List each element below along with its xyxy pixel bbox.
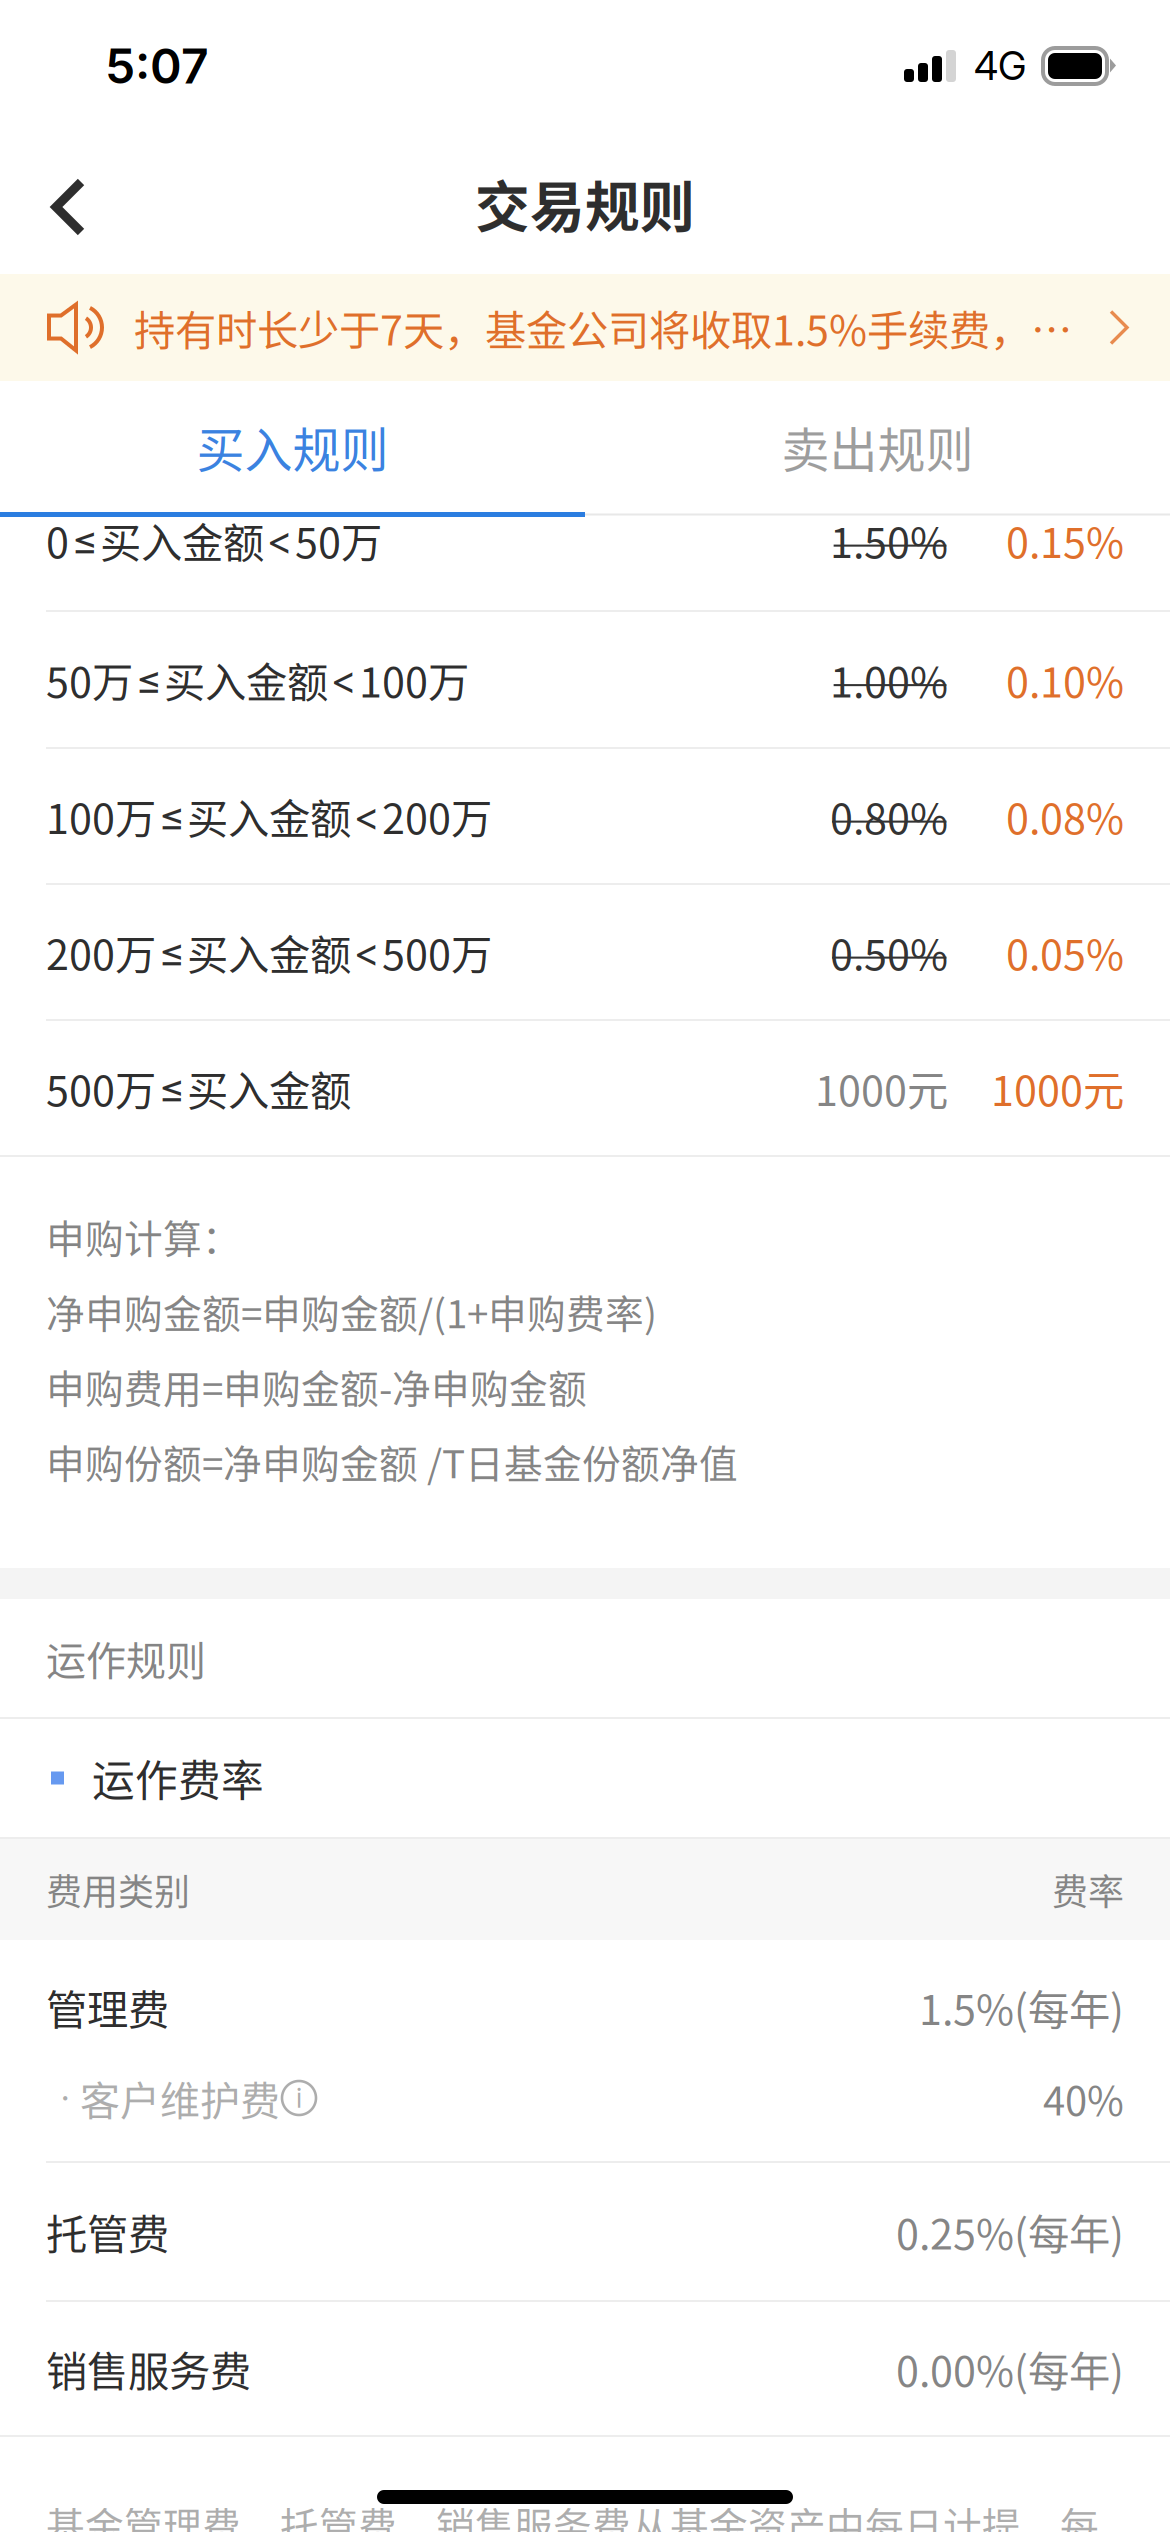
- staticText: 申购费用=申购金额-净申购金额: [46, 1358, 587, 1414]
- staticText: <: [354, 792, 379, 840]
- button[interactable]: ·: [0, 2074, 1170, 2161]
- staticText: 4G: [974, 43, 1026, 89]
- staticText: 卖出规则: [781, 412, 973, 481]
- staticText: 客户维护费: [80, 2069, 280, 2127]
- staticText: ≤: [159, 792, 184, 840]
- staticText: 5:07: [105, 37, 209, 95]
- button[interactable]: 持有时长少于7天，基金公司将收取1.5%手续费，…: [0, 274, 1170, 381]
- staticText: 运作费率: [92, 1747, 264, 1809]
- staticText: 1000元: [991, 1058, 1124, 1118]
- staticText: 买入规则: [196, 412, 388, 481]
- staticText: 100万: [46, 786, 156, 846]
- staticText: <: [331, 655, 356, 704]
- button[interactable]: 返回: [0, 132, 140, 274]
- staticText: 0.00%(每年): [896, 2339, 1124, 2398]
- staticText: ≤: [72, 516, 97, 564]
- staticText: 销售服务费: [46, 2339, 251, 2398]
- staticText: 0.05%: [1006, 922, 1124, 982]
- staticText: 0.50%: [830, 922, 948, 982]
- staticText: 200万: [382, 786, 492, 846]
- staticText: 1000元: [815, 1058, 948, 1118]
- staticText: 买入金额: [100, 510, 264, 570]
- staticText: ≤: [159, 1064, 184, 1112]
- staticText: 托管费: [46, 2202, 169, 2261]
- staticText: 200万: [46, 922, 156, 982]
- staticText: 管理费: [46, 1977, 169, 2037]
- staticText: 交易规则: [475, 163, 695, 243]
- staticText: 买入金额: [164, 650, 328, 709]
- staticText: 500万: [382, 922, 492, 982]
- staticText: 40%: [1043, 2069, 1124, 2127]
- staticText: 0.08%: [1006, 786, 1124, 846]
- staticText: 费率: [1052, 1863, 1124, 1915]
- staticText: 50万: [46, 650, 133, 709]
- button[interactable]: 买入规则: [0, 381, 585, 512]
- staticText: ≤: [159, 928, 184, 976]
- staticText: 0: [46, 510, 69, 570]
- staticText: 基金管理费、托管费、销售服务费从基金资产中每日计提，每: [46, 2496, 1099, 2532]
- staticText: 申购份额=净申购金额 /T日基金份额净值: [46, 1433, 738, 1489]
- staticText: 0.15%: [1006, 510, 1124, 570]
- staticText: 0.10%: [1006, 650, 1124, 709]
- staticText: 0.25%(每年): [896, 2202, 1124, 2261]
- staticText: 买入金额: [187, 786, 351, 846]
- staticText: 1.50%: [830, 510, 948, 570]
- staticText: 申购计算：: [46, 1208, 241, 1264]
- staticText: ·: [61, 2077, 69, 2119]
- staticText: 持有时长少于7天，基金公司将收取1.5%手续费，…: [134, 298, 1072, 357]
- staticText: 1.00%: [830, 650, 948, 709]
- staticText: i: [296, 2082, 302, 2114]
- button[interactable]: 卖出规则: [585, 381, 1170, 512]
- staticText: 运作规则: [46, 1629, 206, 1687]
- staticText: 费用类别: [46, 1863, 190, 1915]
- staticText: 1.5%(每年): [919, 1977, 1124, 2037]
- staticText: 500万: [46, 1058, 156, 1118]
- staticText: <: [354, 928, 379, 976]
- staticText: <: [267, 516, 292, 564]
- staticText: 0.80%: [830, 786, 948, 846]
- staticText: 净申购金额=申购金额/(1+申购费率): [46, 1283, 657, 1339]
- staticText: 买入金额: [187, 922, 351, 982]
- staticText: ≤: [136, 655, 161, 704]
- staticText: 100万: [359, 650, 469, 709]
- staticText: 50万: [295, 510, 382, 570]
- staticText: 买入金额: [187, 1058, 351, 1118]
